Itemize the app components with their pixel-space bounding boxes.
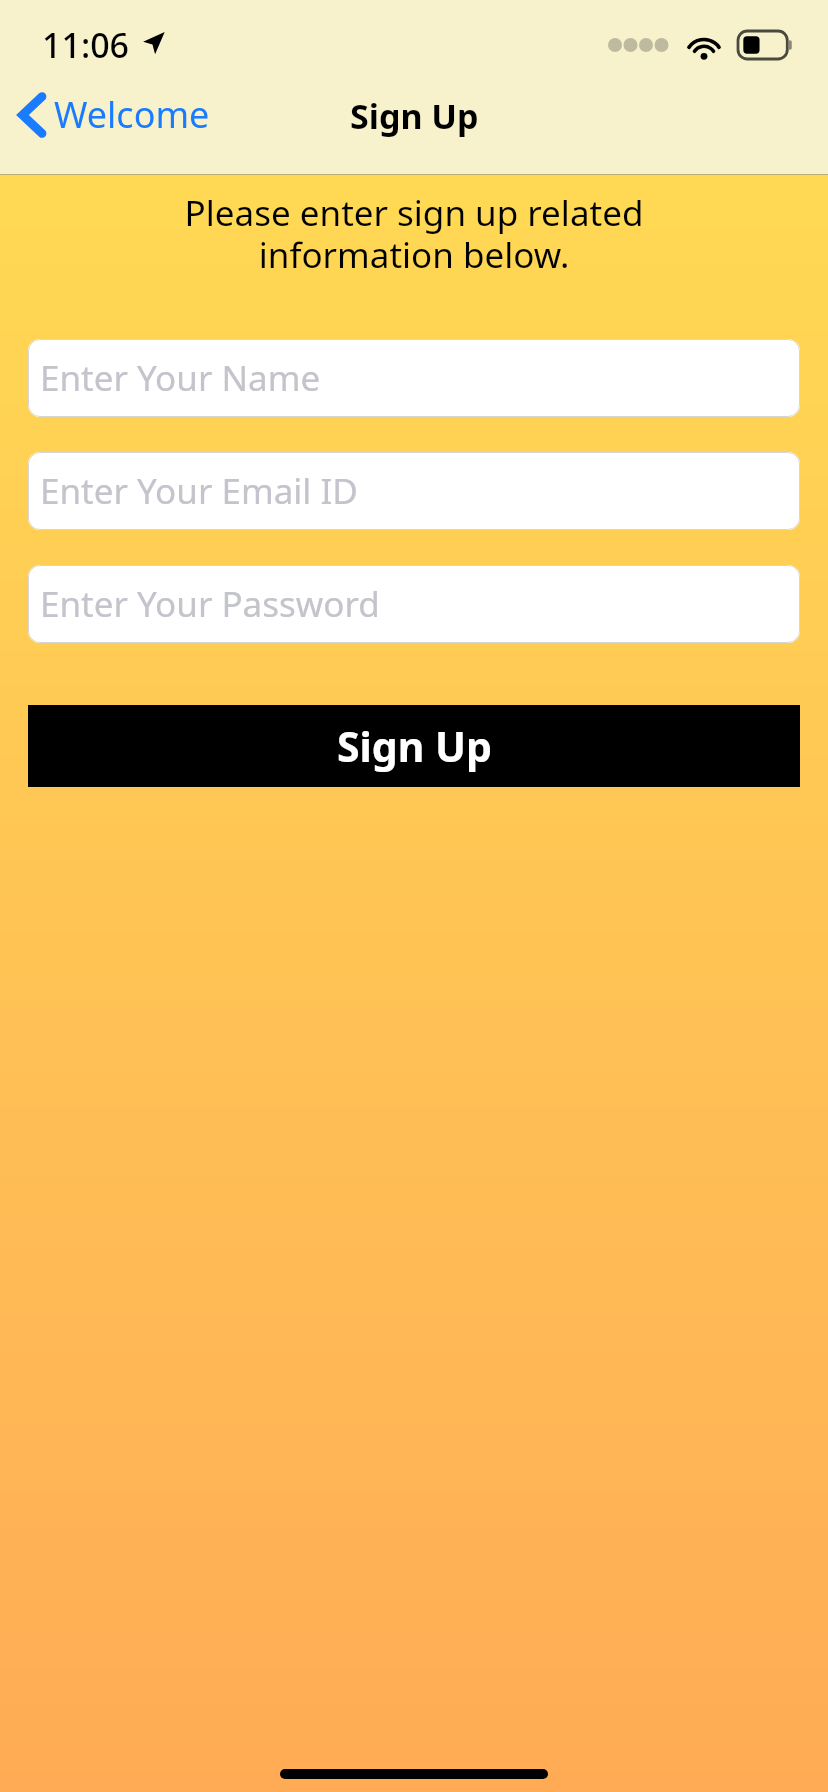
staticText: Sign Up (350, 93, 479, 139)
staticText: Enter Your Name (40, 354, 321, 402)
staticText: 11:06 (42, 22, 130, 68)
staticText: Welcome (54, 90, 210, 139)
button[interactable]: Enter Your Password (28, 565, 800, 643)
button[interactable]: Welcome (0, 82, 224, 147)
button[interactable]: Enter Your Email ID (28, 452, 800, 530)
button[interactable]: Sign Up (28, 705, 800, 787)
staticText: Enter Your Email ID (40, 467, 358, 515)
staticText: Please enter sign up related information… (28, 189, 800, 278)
staticText: Enter Your Password (40, 580, 380, 628)
button[interactable]: Enter Your Name (28, 339, 800, 417)
staticText: Sign Up (337, 718, 492, 774)
